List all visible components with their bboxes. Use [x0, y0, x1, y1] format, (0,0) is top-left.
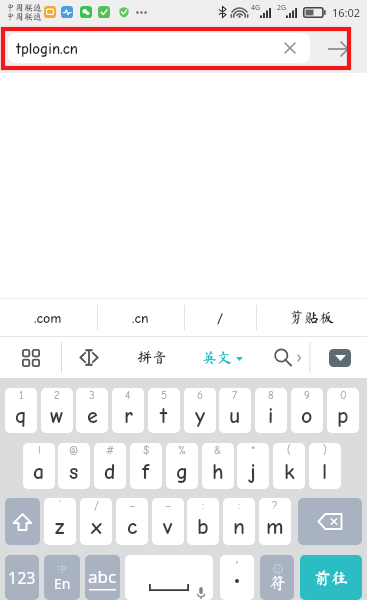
button[interactable]: 6: [184, 388, 216, 433]
staticText: 2G: [277, 3, 287, 13]
staticText: –: [129, 499, 136, 512]
staticText: !: [38, 444, 41, 457]
staticText: %: [178, 444, 186, 457]
staticText: 7: [232, 389, 238, 402]
button[interactable]: 3: [76, 388, 108, 433]
staticText: 中: [58, 563, 67, 574]
button[interactable]: :: [187, 498, 219, 545]
button[interactable]: 9: [291, 388, 323, 433]
staticText: 4G: [251, 3, 261, 13]
button[interactable]: Go: [322, 34, 354, 64]
staticText: 5: [161, 389, 167, 402]
button[interactable]: 7: [219, 388, 251, 433]
staticText: (: [287, 444, 291, 457]
button[interactable]: 前往: [300, 555, 362, 600]
button[interactable]: Hide keyboard: [320, 337, 360, 378]
button[interactable]: .cn: [108, 298, 172, 337]
staticText: i: [268, 403, 274, 428]
staticText: y: [195, 403, 206, 428]
staticText: tplogin.cn: [16, 40, 78, 57]
staticText: 1: [19, 389, 24, 402]
staticText: g: [176, 459, 189, 484]
button[interactable]: .com: [16, 298, 80, 337]
staticText: 中国联通: [6, 3, 43, 12]
button[interactable]: 8: [255, 388, 287, 433]
button[interactable]: ): [309, 443, 341, 489]
button[interactable]: :: [223, 498, 255, 545]
staticText: e: [87, 403, 98, 428]
button[interactable]: –: [116, 498, 148, 545]
button[interactable]: *: [237, 443, 269, 489]
staticText: 英文: [202, 350, 233, 365]
button[interactable]: Keyboard layouts: [9, 337, 53, 378]
button[interactable]: Backspace: [298, 498, 362, 545]
staticText: 6: [197, 389, 203, 402]
staticText: 剪贴板: [289, 310, 335, 325]
staticText: En: [54, 574, 71, 593]
staticText: 123: [8, 567, 36, 589]
button[interactable]: ’: [220, 555, 254, 600]
button[interactable]: ?: [259, 498, 291, 545]
staticText: ’: [59, 499, 62, 512]
staticText: 拼音: [137, 350, 168, 365]
staticText: h: [212, 459, 224, 484]
button[interactable]: /: [188, 298, 252, 337]
staticText: 9: [304, 389, 310, 402]
button[interactable]: $: [130, 443, 162, 489]
staticText: n: [233, 514, 245, 539]
staticText: 0: [340, 389, 347, 402]
staticText: x: [91, 514, 102, 539]
button[interactable]: Search: [266, 337, 310, 378]
staticText: 8: [268, 389, 274, 402]
staticText: b: [197, 514, 209, 539]
button[interactable]: (: [273, 443, 305, 489]
staticText: z: [55, 514, 65, 539]
button[interactable]: abc: [85, 555, 120, 600]
staticText: k: [284, 459, 295, 484]
button[interactable]: 1: [5, 388, 37, 433]
staticText: q: [15, 403, 27, 428]
button[interactable]: #: [94, 443, 126, 489]
staticText: /: [217, 310, 224, 326]
staticText: p: [337, 403, 349, 428]
staticText: j: [250, 459, 256, 484]
button[interactable]: 0: [327, 388, 359, 433]
button[interactable]: 4: [112, 388, 144, 433]
button[interactable]: /: [80, 498, 112, 545]
staticText: abc: [88, 565, 117, 588]
button[interactable]: 2: [41, 388, 73, 433]
button[interactable]: 符: [260, 555, 294, 600]
staticText: *: [251, 444, 256, 457]
button[interactable]: 拼音: [126, 337, 178, 378]
staticText: ’: [236, 557, 238, 572]
staticText: #: [106, 444, 115, 457]
button[interactable]: 123: [5, 555, 39, 600]
staticText: 前往: [314, 569, 348, 586]
staticText: t: [160, 403, 168, 428]
button[interactable]: %: [166, 443, 198, 489]
staticText: d: [104, 459, 116, 484]
button[interactable]: &: [202, 443, 234, 489]
button[interactable]: !: [23, 443, 55, 489]
staticText: 3: [89, 389, 95, 402]
button[interactable]: Shift: [5, 498, 40, 545]
button[interactable]: –: [152, 498, 184, 545]
button[interactable]: Move cursor: [67, 337, 111, 378]
button[interactable]: 英文: [192, 337, 252, 378]
staticText: 4: [125, 389, 131, 402]
staticText: /: [94, 499, 99, 512]
staticText: f: [142, 459, 150, 484]
staticText: @: [69, 444, 79, 457]
button[interactable]: ’: [44, 498, 76, 545]
staticText: s: [69, 459, 79, 484]
staticText: c: [127, 514, 138, 539]
button[interactable]: Space: [125, 555, 213, 600]
button[interactable]: Clear: [279, 37, 301, 59]
staticText: –: [165, 499, 172, 512]
button[interactable]: @: [58, 443, 90, 489]
button[interactable]: 5: [148, 388, 180, 433]
button[interactable]: 中: [44, 555, 80, 600]
button[interactable]: 剪贴板: [280, 298, 344, 337]
button[interactable]: tplogin.cn: [8, 33, 310, 63]
staticText: a: [33, 459, 45, 484]
